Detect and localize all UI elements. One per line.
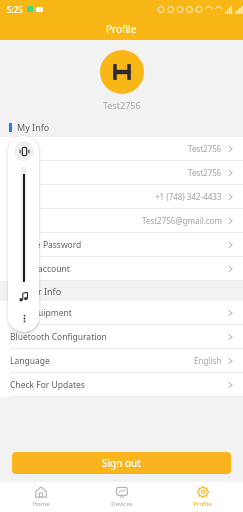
staticText: Delete account <box>10 263 70 275</box>
button[interactable]: Test2756@gmail.com <box>0 209 243 233</box>
button[interactable]: Add Equipment <box>0 301 243 325</box>
button[interactable]: Delete account <box>0 257 243 281</box>
staticText: Other Info <box>17 285 62 297</box>
staticText: Language <box>10 355 50 367</box>
button[interactable]: Test2756 <box>0 161 243 185</box>
button[interactable]: Avatar <box>100 50 144 94</box>
staticText: Devices <box>111 500 133 508</box>
staticText: Add Equipment <box>10 307 72 319</box>
staticText: Test2756 <box>188 143 222 154</box>
button[interactable]: +1 (748) 342-4433 <box>0 185 243 209</box>
button[interactable]: Vibrate <box>14 141 34 161</box>
staticText: Profile <box>193 500 212 508</box>
button[interactable]: Change Password <box>0 233 243 257</box>
staticText: Test2756@gmail.com <box>142 215 222 226</box>
staticText: Name <box>10 143 34 155</box>
button[interactable]: Check For Updates <box>0 373 243 397</box>
button[interactable]: Name <box>0 137 243 161</box>
button[interactable]: Volume slider <box>21 167 26 282</box>
button[interactable]: Devices <box>81 482 162 512</box>
staticText: Check For Updates <box>10 379 85 391</box>
button[interactable]: Media volume <box>15 288 33 306</box>
staticText: Home <box>32 500 50 508</box>
button[interactable]: Profile <box>162 482 243 512</box>
staticText: My Info <box>17 121 50 133</box>
button[interactable]: Language <box>0 349 243 373</box>
staticText: +1 (748) 342-4433 <box>155 191 222 202</box>
staticText: 5:25 <box>7 4 23 15</box>
button[interactable]: Home <box>0 482 81 512</box>
staticText: Test2756 <box>103 99 141 111</box>
staticText: Sign out <box>102 456 141 470</box>
button[interactable]: Bluetooth Configuration <box>0 325 243 349</box>
staticText: English <box>194 355 222 366</box>
staticText: Profile <box>106 22 137 36</box>
staticText: Test2756 <box>188 167 222 178</box>
button[interactable]: Sign out <box>12 452 231 474</box>
button[interactable]: More settings <box>15 309 33 327</box>
staticText: Bluetooth Configuration <box>10 331 107 343</box>
staticText: Change Password <box>10 239 82 251</box>
